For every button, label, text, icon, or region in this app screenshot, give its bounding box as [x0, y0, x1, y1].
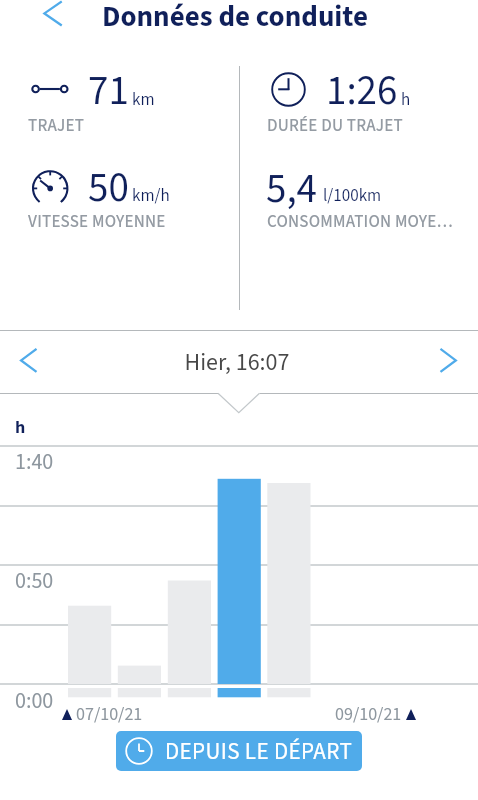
staticText: 50 [88, 159, 129, 217]
button[interactable]: Back [24, 0, 72, 38]
staticText: 09/10/21 [335, 702, 402, 728]
staticText: 0:50 [15, 565, 54, 596]
button[interactable]: DEPUIS LE DÉPART [116, 731, 362, 771]
button[interactable]: Previous day [6, 336, 54, 384]
staticText: h [401, 88, 411, 112]
staticText: 5,4 [266, 160, 317, 218]
staticText: km [132, 88, 155, 112]
staticText: DURÉE DU TRAJET [267, 114, 403, 138]
staticText: km/h [132, 184, 170, 208]
staticText: TRAJET [28, 114, 85, 138]
staticText: h [15, 415, 26, 441]
staticText: VITESSE MOYENNE [28, 210, 166, 234]
staticText: Données de conduite [102, 0, 368, 37]
staticText: Hier, 16:07 [0, 345, 476, 379]
staticText: 1:26 [326, 62, 398, 120]
staticText: DEPUIS LE DÉPART [165, 735, 353, 768]
staticText: 1:40 [15, 446, 54, 477]
staticText: 0:00 [15, 685, 54, 716]
staticText: 07/10/21 [76, 702, 143, 728]
button[interactable]: Next day [425, 336, 473, 384]
staticText: l/100km [323, 184, 382, 208]
staticText: CONSOMMATION MOYE… [267, 210, 454, 234]
staticText: 71 [88, 62, 129, 120]
